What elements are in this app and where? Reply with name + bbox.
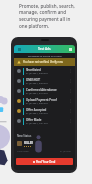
- staticText: 21 Jul 2021, 7:41 PM: [26, 122, 48, 125]
- staticText: Shortlisted: [26, 68, 41, 72]
- button[interactable]: Offer Made: [14, 116, 75, 126]
- staticText: New Status: [17, 134, 32, 138]
- staticText: 21 Jul 2021, 8:20 PM: [26, 82, 48, 85]
- button[interactable]: SELLER: [17, 140, 33, 147]
- staticText: ⋮: [69, 69, 73, 73]
- staticText: Confirmed Attendance: [26, 88, 57, 92]
- staticText: ⋮: [69, 99, 73, 103]
- staticText: Test Ads: [38, 47, 51, 51]
- staticText: 21 Jul 2021: [60, 150, 72, 153]
- staticText: 21 Jul 2021, 8:05 PM: [26, 102, 48, 105]
- staticText: ONESHOT!: [26, 78, 41, 82]
- button[interactable]: Confirmed Attendance: [14, 86, 75, 96]
- button[interactable]: Find Your Deal: [16, 158, 73, 165]
- staticText: Promote, publish, search, manage, confir…: [19, 3, 91, 30]
- staticText: ad expires in Oct 08 4h 8 mins: [28, 54, 62, 57]
- staticText: Offer Accepted: [26, 108, 47, 112]
- staticText: SELLER: [24, 141, 33, 145]
- staticText: Upload Payment Proof: [26, 98, 57, 102]
- staticText: Find Your Deal: [36, 160, 56, 164]
- staticText: Ad ID 08821: [17, 150, 30, 153]
- staticText: ⋮: [69, 119, 73, 123]
- staticText: Offer Made: [26, 118, 42, 122]
- staticText: 21 Jul 2021, 8:30 PM: [26, 72, 48, 75]
- staticText: 21 Jul 2021, 7:52 PM: [26, 112, 48, 115]
- button[interactable]: Test Ads: [14, 45, 75, 53]
- staticText: 21 Jul 2021, 8:12 PM: [26, 92, 48, 95]
- button[interactable]: ONESHOT!: [14, 76, 75, 86]
- staticText: You have not verified. Verify now: [23, 60, 63, 64]
- staticText: ⋮: [69, 89, 73, 93]
- button[interactable]: Shortlisted: [14, 66, 75, 76]
- staticText: ⋮: [69, 79, 73, 83]
- staticText: ⋮: [69, 109, 73, 113]
- button[interactable]: Offer Accepted: [14, 106, 75, 116]
- button[interactable]: You have not verified. Verify now: [14, 58, 75, 66]
- button[interactable]: Upload Payment Proof: [14, 96, 75, 106]
